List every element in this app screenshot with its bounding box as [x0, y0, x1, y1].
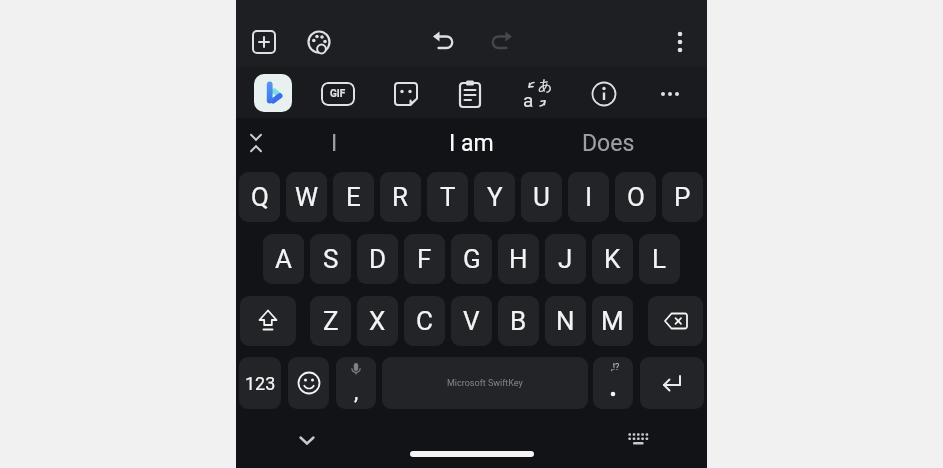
- button[interactable]: E: [333, 172, 374, 222]
- staticText: あ: [538, 77, 553, 95]
- button[interactable]: [293, 426, 321, 454]
- staticText: A: [275, 244, 292, 274]
- button[interactable]: [240, 296, 296, 346]
- button[interactable]: [303, 26, 335, 58]
- button[interactable]: D: [357, 234, 398, 284]
- button[interactable]: [624, 426, 652, 454]
- button[interactable]: Does: [554, 120, 662, 166]
- button[interactable]: F: [404, 234, 445, 284]
- button[interactable]: K: [592, 234, 633, 284]
- button[interactable]: O: [615, 172, 656, 222]
- button[interactable]: [254, 74, 292, 112]
- button[interactable]: I: [280, 120, 388, 166]
- button[interactable]: Z: [310, 296, 351, 346]
- staticText: ,: [354, 379, 359, 405]
- button[interactable]: J: [545, 234, 586, 284]
- staticText: M: [601, 306, 624, 336]
- staticText: I: [585, 182, 593, 212]
- button[interactable]: GIF: [321, 82, 355, 106]
- staticText: J: [558, 244, 573, 274]
- button[interactable]: [648, 296, 703, 346]
- staticText: W: [295, 182, 319, 212]
- staticText: L: [652, 244, 667, 274]
- button[interactable]: W: [286, 172, 327, 222]
- staticText: Q: [251, 182, 269, 212]
- staticText: I am: [449, 130, 494, 157]
- staticText: R: [392, 182, 409, 212]
- staticText: Y: [487, 182, 503, 212]
- staticText: P: [674, 182, 691, 212]
- button[interactable]: S: [310, 234, 351, 284]
- button[interactable]: [664, 26, 696, 58]
- staticText: K: [604, 244, 621, 274]
- staticText: Z: [323, 306, 339, 336]
- staticText: F: [417, 244, 432, 274]
- staticText: a: [523, 89, 534, 111]
- staticText: X: [369, 306, 386, 336]
- staticText: D: [369, 244, 387, 274]
- button[interactable]: [288, 357, 329, 409]
- button[interactable]: R: [380, 172, 421, 222]
- button[interactable]: Y: [474, 172, 515, 222]
- button[interactable]: Q: [239, 172, 280, 222]
- button[interactable]: C: [404, 296, 445, 346]
- staticText: O: [627, 182, 645, 212]
- staticText: H: [509, 244, 528, 274]
- button[interactable]: [593, 357, 633, 409]
- staticText: C: [416, 306, 433, 336]
- staticText: Does: [582, 130, 635, 157]
- button[interactable]: [336, 357, 376, 409]
- button[interactable]: I am: [416, 120, 526, 166]
- button[interactable]: [640, 357, 704, 409]
- staticText: E: [346, 182, 361, 212]
- button[interactable]: U: [521, 172, 562, 222]
- staticText: U: [533, 182, 550, 212]
- button[interactable]: P: [662, 172, 703, 222]
- button[interactable]: X: [357, 296, 398, 346]
- staticText: ,!?: [611, 362, 620, 373]
- button[interactable]: [390, 78, 422, 110]
- button[interactable]: T: [427, 172, 468, 222]
- button[interactable]: [454, 78, 486, 110]
- button[interactable]: [242, 129, 270, 157]
- staticText: GIF: [330, 88, 346, 100]
- button[interactable]: M: [592, 296, 633, 346]
- button[interactable]: V: [451, 296, 492, 346]
- button[interactable]: I: [568, 172, 609, 222]
- button[interactable]: a: [517, 74, 557, 114]
- staticText: B: [510, 306, 527, 336]
- button[interactable]: N: [545, 296, 586, 346]
- staticText: N: [556, 306, 575, 336]
- button[interactable]: [429, 26, 461, 58]
- button[interactable]: L: [639, 234, 680, 284]
- button[interactable]: G: [451, 234, 492, 284]
- button[interactable]: [248, 26, 280, 58]
- button[interactable]: B: [498, 296, 539, 346]
- button[interactable]: H: [498, 234, 539, 284]
- staticText: S: [323, 244, 339, 274]
- button[interactable]: [588, 78, 620, 110]
- button[interactable]: 123: [239, 357, 281, 409]
- staticText: Microsoft SwiftKey: [447, 378, 523, 389]
- button[interactable]: [410, 451, 534, 457]
- staticText: 123: [245, 373, 276, 394]
- button[interactable]: Microsoft SwiftKey: [382, 357, 588, 409]
- button[interactable]: [654, 78, 686, 110]
- staticText: V: [463, 306, 480, 336]
- staticText: I: [331, 130, 338, 157]
- staticText: G: [463, 244, 481, 274]
- button[interactable]: [484, 26, 516, 58]
- staticText: T: [440, 182, 456, 212]
- button[interactable]: A: [263, 234, 304, 284]
